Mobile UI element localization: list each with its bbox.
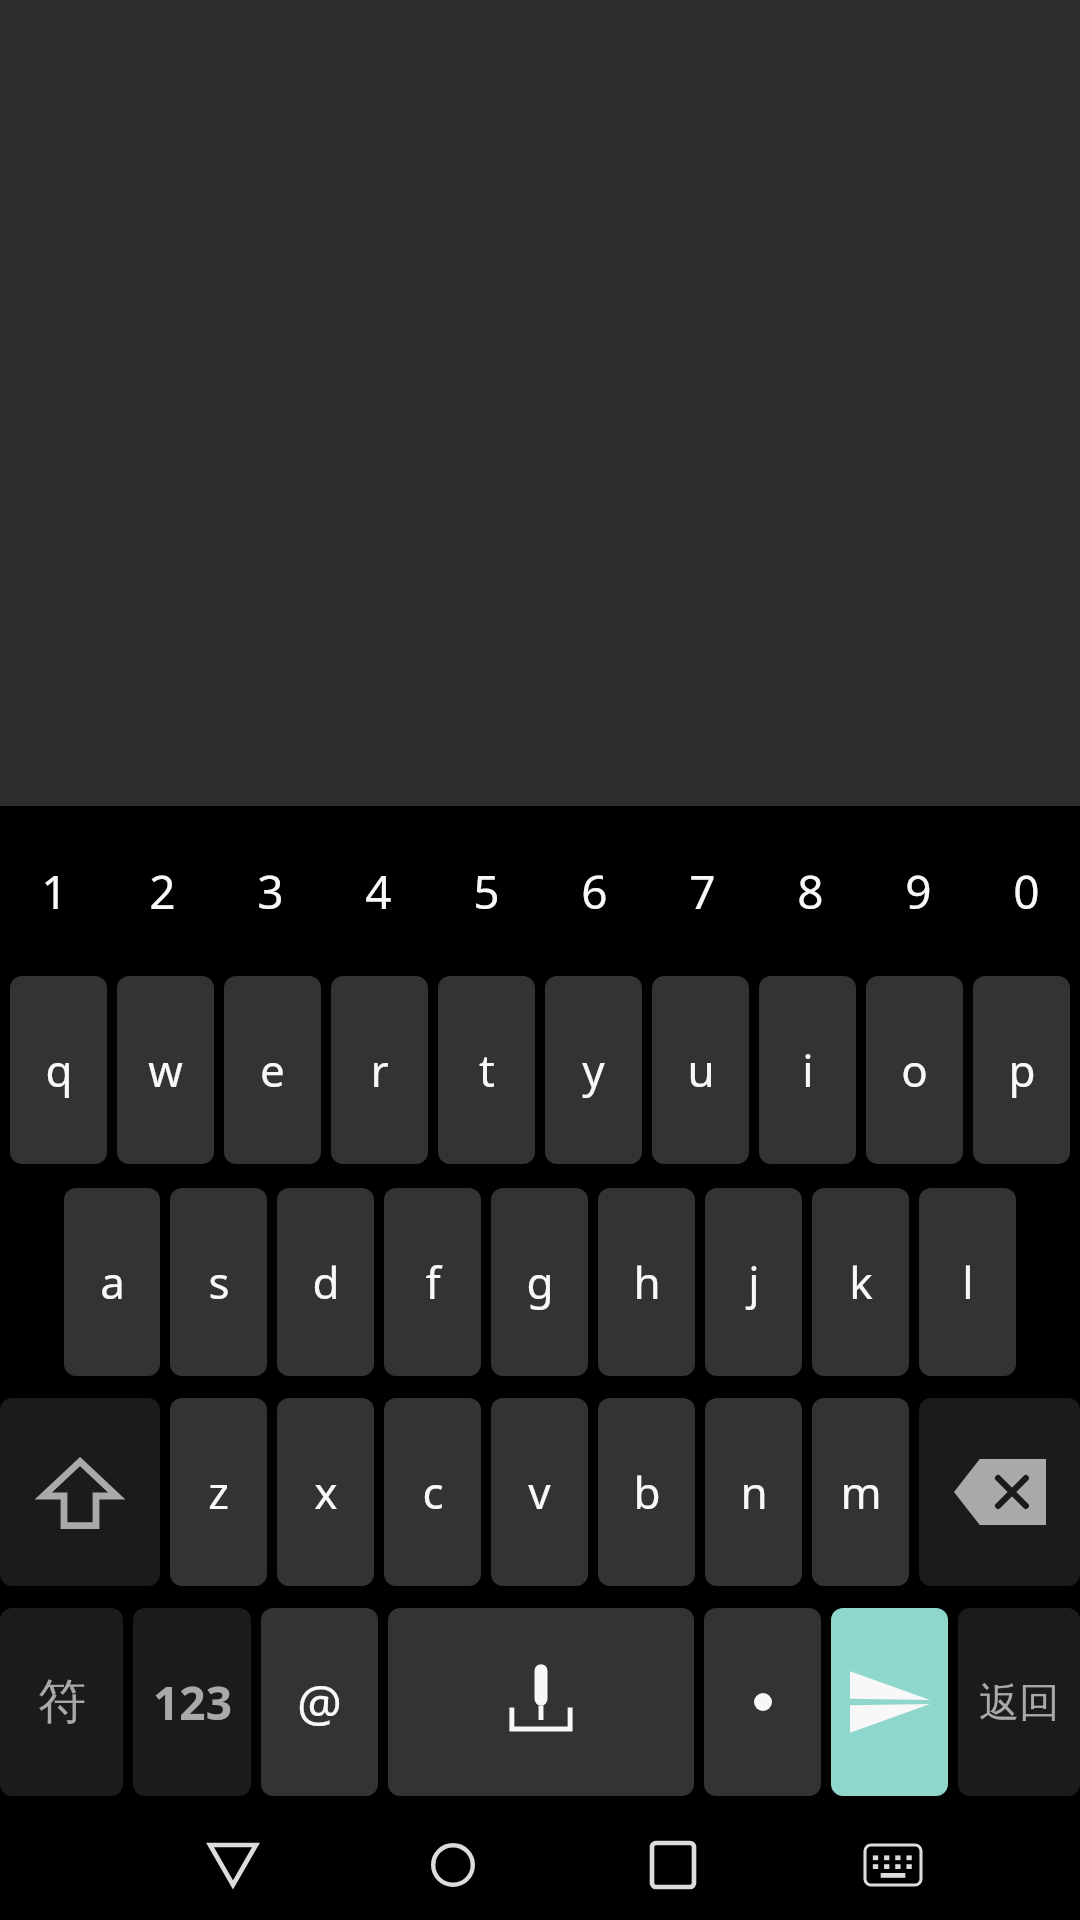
staticText: 123 <box>153 1671 232 1734</box>
button[interactable]: 1 <box>0 806 108 976</box>
staticText: m <box>840 1462 882 1522</box>
button[interactable]: 5 <box>432 806 540 976</box>
staticText: a <box>100 1252 125 1312</box>
staticText: r <box>370 1040 389 1100</box>
staticText: t <box>479 1040 495 1100</box>
staticText: c <box>422 1462 444 1522</box>
button[interactable]: i <box>759 976 856 1164</box>
staticText: z <box>208 1462 229 1522</box>
staticText: v <box>528 1462 551 1522</box>
staticText: d <box>312 1252 340 1312</box>
button[interactable]: 符 <box>0 1608 123 1796</box>
button[interactable]: r <box>331 976 428 1164</box>
button[interactable]: 3 <box>216 806 324 976</box>
button[interactable]: Back <box>122 1810 343 1920</box>
button[interactable]: k <box>812 1188 909 1376</box>
button[interactable]: 123 <box>133 1608 251 1796</box>
button[interactable]: Period <box>704 1608 821 1796</box>
button[interactable]: Switch keyboard <box>783 1810 1003 1920</box>
staticText: u <box>687 1040 715 1100</box>
button[interactable]: Shift <box>0 1398 160 1586</box>
staticText: 9 <box>905 860 932 923</box>
button[interactable]: Backspace <box>919 1398 1080 1586</box>
button[interactable]: a <box>64 1188 160 1376</box>
button[interactable]: z <box>170 1398 267 1586</box>
button[interactable]: b <box>598 1398 695 1586</box>
button[interactable]: @ <box>261 1608 378 1796</box>
button[interactable]: m <box>812 1398 909 1586</box>
button[interactable]: 2 <box>108 806 216 976</box>
staticText: @ <box>297 1668 342 1736</box>
staticText: k <box>849 1252 873 1312</box>
button[interactable]: h <box>598 1188 695 1376</box>
button[interactable]: s <box>170 1188 267 1376</box>
button[interactable]: d <box>277 1188 374 1376</box>
staticText: 8 <box>797 860 824 923</box>
button[interactable]: v <box>491 1398 588 1586</box>
button[interactable]: 8 <box>756 806 864 976</box>
staticText: o <box>901 1040 928 1100</box>
staticText: 返回 <box>979 1677 1059 1727</box>
button[interactable]: u <box>652 976 749 1164</box>
staticText: q <box>45 1040 73 1100</box>
staticText: p <box>1008 1040 1036 1100</box>
button[interactable]: x <box>277 1398 374 1586</box>
button[interactable]: j <box>705 1188 802 1376</box>
button[interactable]: 0 <box>972 806 1080 976</box>
staticText: 2 <box>149 860 176 923</box>
button[interactable]: y <box>545 976 642 1164</box>
button[interactable]: e <box>224 976 321 1164</box>
button[interactable]: q <box>10 976 107 1164</box>
button[interactable]: Home <box>343 1810 563 1920</box>
staticText: 4 <box>365 860 392 923</box>
button[interactable]: p <box>973 976 1070 1164</box>
button[interactable]: l <box>919 1188 1016 1376</box>
button[interactable]: n <box>705 1398 802 1586</box>
staticText: 1 <box>41 860 68 923</box>
staticText: 符 <box>38 1672 86 1732</box>
staticText: h <box>633 1252 661 1312</box>
staticText: s <box>208 1252 230 1312</box>
staticText: g <box>526 1252 554 1312</box>
staticText: i <box>802 1040 814 1100</box>
button[interactable]: c <box>384 1398 481 1586</box>
button[interactable]: w <box>117 976 214 1164</box>
staticText: 7 <box>689 860 716 923</box>
staticText: 3 <box>257 860 284 923</box>
button[interactable]: t <box>438 976 535 1164</box>
button[interactable]: Space, voice input <box>388 1608 694 1796</box>
staticText: x <box>314 1462 338 1522</box>
staticText: f <box>425 1252 441 1312</box>
staticText: 0 <box>1013 860 1040 923</box>
staticText: n <box>740 1462 768 1522</box>
staticText: 5 <box>473 860 500 923</box>
staticText: l <box>962 1252 974 1312</box>
staticText: y <box>582 1040 605 1100</box>
staticText: w <box>148 1040 183 1100</box>
button[interactable]: g <box>491 1188 588 1376</box>
button[interactable]: o <box>866 976 963 1164</box>
button[interactable]: 6 <box>540 806 648 976</box>
staticText: e <box>260 1040 285 1100</box>
staticText: b <box>633 1462 661 1522</box>
button[interactable]: f <box>384 1188 481 1376</box>
button[interactable]: Recents <box>563 1810 783 1920</box>
button[interactable]: 返回 <box>958 1608 1080 1796</box>
button[interactable]: 7 <box>648 806 756 976</box>
staticText: j <box>748 1252 760 1312</box>
button[interactable]: Send <box>831 1608 948 1796</box>
staticText: 6 <box>581 860 608 923</box>
button[interactable]: 4 <box>324 806 432 976</box>
button[interactable]: 9 <box>864 806 972 976</box>
